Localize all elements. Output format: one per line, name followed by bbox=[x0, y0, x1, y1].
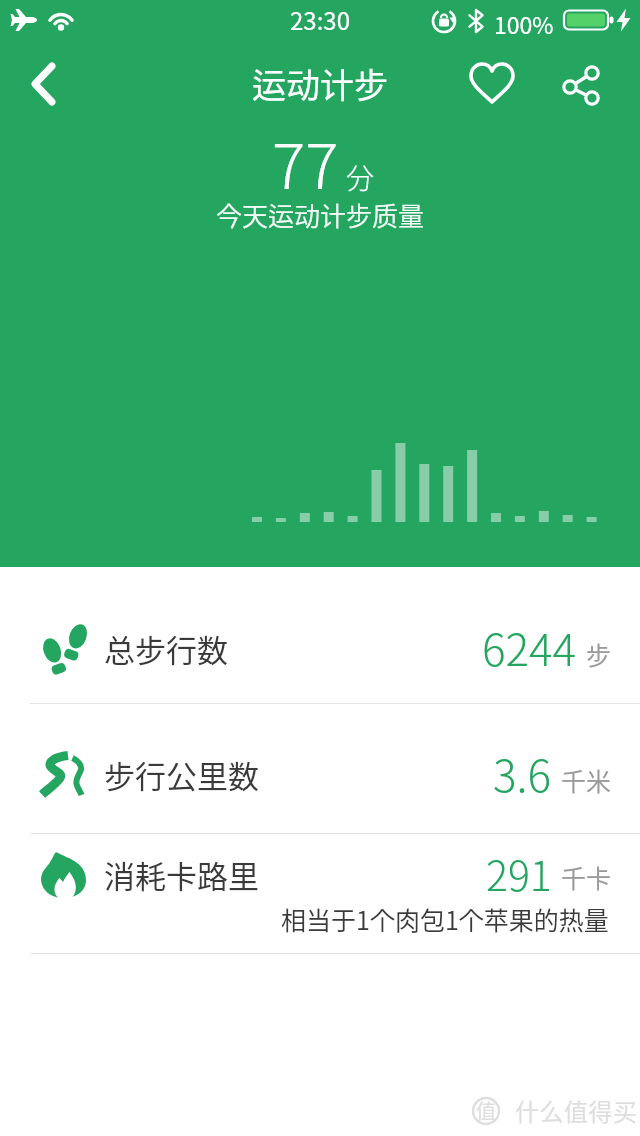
staticText: 100% bbox=[494, 7, 554, 40]
staticText: 千米 bbox=[561, 762, 612, 798]
staticText: 23:30 bbox=[290, 2, 350, 37]
button[interactable]: 步行公里数 bbox=[0, 704, 640, 833]
staticText: 总步行数 bbox=[104, 626, 228, 671]
button[interactable]: 消耗卡路里 bbox=[0, 834, 640, 953]
staticText: 相当于1个肉包1个苹果的热量 bbox=[281, 901, 609, 937]
button[interactable] bbox=[552, 44, 612, 124]
staticText: 3.6 bbox=[493, 741, 552, 805]
staticText: 今天运动计步质量 bbox=[216, 196, 425, 234]
staticText: 运动计步 bbox=[252, 59, 388, 108]
staticText: 分 bbox=[346, 157, 375, 198]
button[interactable] bbox=[0, 44, 70, 124]
staticText: 值 bbox=[476, 1096, 496, 1125]
button[interactable] bbox=[462, 44, 522, 124]
staticText: 6244 bbox=[482, 615, 577, 679]
staticText: 消耗卡路里 bbox=[104, 852, 259, 897]
staticText: 步 bbox=[586, 636, 612, 672]
staticText: 什么值得买 bbox=[515, 1093, 638, 1128]
button[interactable]: 总步行数 bbox=[0, 567, 640, 703]
staticText: 291 bbox=[486, 843, 552, 902]
staticText: 千卡 bbox=[561, 859, 612, 895]
staticText: 77 bbox=[272, 117, 339, 207]
staticText: 步行公里数 bbox=[104, 752, 259, 797]
